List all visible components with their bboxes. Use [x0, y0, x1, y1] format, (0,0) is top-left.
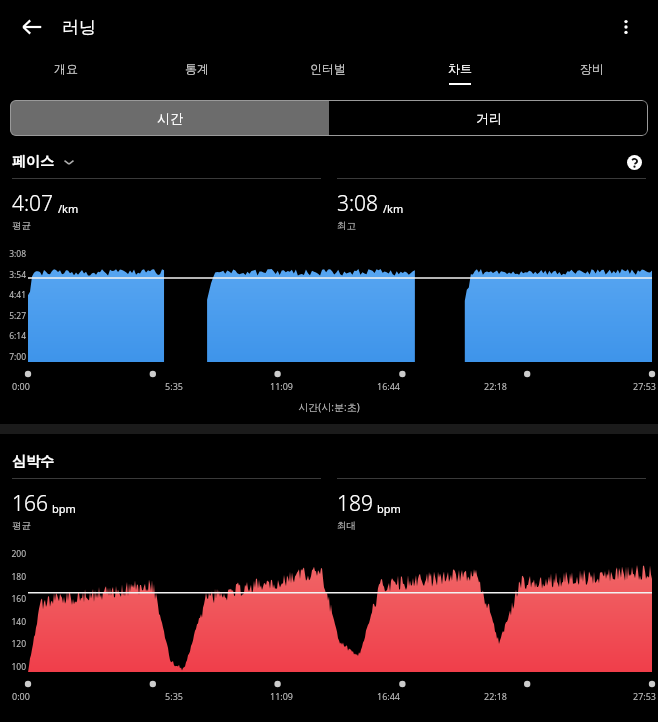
staticText: 200 [0, 548, 26, 559]
staticText: 27:53 [549, 690, 656, 702]
button[interactable]: 거리 [329, 100, 648, 136]
staticText: 100 [0, 661, 26, 672]
staticText: 최대 [337, 520, 356, 532]
button[interactable]: 인터벌 [262, 54, 394, 92]
staticText: bpm [52, 501, 76, 516]
staticText: 시간 [157, 110, 183, 126]
staticText: 거리 [476, 110, 502, 126]
button[interactable]: 통계 [131, 54, 262, 92]
staticText: 페이스 [12, 153, 54, 171]
staticText: 장비 [580, 61, 604, 76]
staticText: 3:54 [0, 269, 26, 280]
staticText: 4:07 [12, 189, 54, 218]
staticText: 22:18 [442, 380, 549, 392]
button[interactable]: 차트 [394, 54, 526, 92]
staticText: 5:35 [120, 380, 228, 392]
staticText: 최고 [337, 220, 356, 232]
staticText: 120 [0, 638, 26, 649]
staticText: 개요 [54, 61, 78, 76]
staticText: 러닝 [62, 17, 96, 38]
staticText: 16:44 [335, 690, 442, 702]
staticText: 평균 [12, 220, 31, 232]
staticText: 180 [0, 571, 26, 582]
button[interactable]: Back [10, 5, 54, 49]
staticText: 22:18 [442, 690, 549, 702]
staticText: 166 [12, 489, 48, 518]
staticText: 차트 [448, 61, 472, 76]
staticText: 0:00 [12, 380, 120, 392]
staticText: 통계 [185, 61, 209, 76]
staticText: bpm [377, 501, 401, 516]
staticText: 4:41 [0, 289, 26, 300]
button[interactable]: 시간 [10, 100, 329, 136]
button[interactable]: 장비 [526, 54, 658, 92]
staticText: 27:53 [549, 380, 656, 392]
staticText: 5:27 [0, 310, 26, 321]
button[interactable]: 개요 [0, 54, 131, 92]
staticText: 5:35 [120, 690, 228, 702]
staticText: 3:08 [0, 248, 26, 259]
staticText: 6:14 [0, 330, 26, 341]
staticText: 16:44 [335, 380, 442, 392]
button[interactable]: Help [620, 148, 648, 176]
staticText: 3:08 [337, 189, 379, 218]
staticText: 189 [337, 489, 373, 518]
staticText: 평균 [12, 520, 31, 532]
staticText: /km [58, 201, 79, 216]
staticText: 7:00 [0, 351, 26, 362]
button[interactable]: More options [604, 5, 648, 49]
staticText: 인터벌 [310, 61, 346, 76]
staticText: 11:09 [228, 690, 335, 702]
staticText: 심박수 [12, 453, 54, 471]
button[interactable]: 페이스 [12, 153, 76, 171]
staticText: 11:09 [228, 380, 335, 392]
staticText: 140 [0, 616, 26, 627]
button[interactable]: 심박수 [12, 453, 54, 471]
staticText: 0:00 [12, 690, 120, 702]
staticText: 160 [0, 593, 26, 604]
staticText: /km [383, 201, 404, 216]
staticText: 시간(시:분:초) [0, 400, 658, 414]
